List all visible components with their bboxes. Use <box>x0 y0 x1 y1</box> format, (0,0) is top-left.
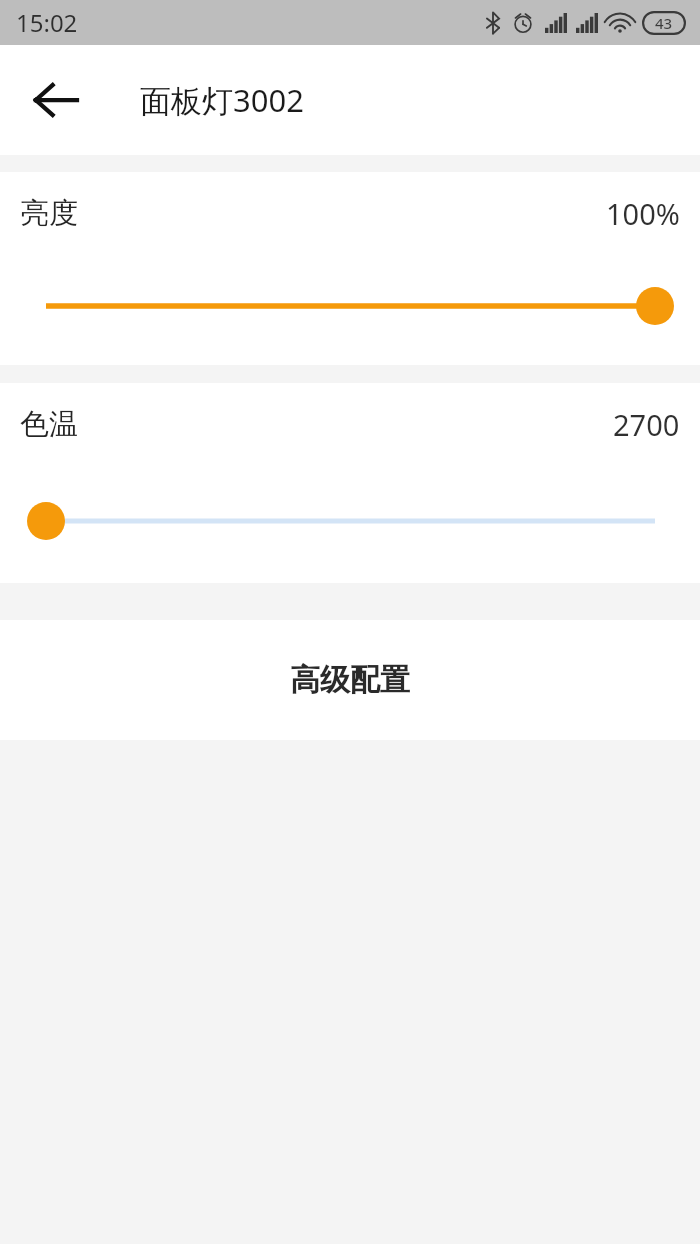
staticText: 2700 <box>613 405 680 444</box>
button[interactable] <box>0 493 700 549</box>
staticText: 色温 <box>20 406 78 443</box>
staticText: 亮度 <box>20 195 78 232</box>
staticText: 43 <box>655 13 673 33</box>
staticText: 15:02 <box>16 6 78 39</box>
button[interactable]: 高级配置 <box>0 620 700 740</box>
staticText: 面板灯3002 <box>140 79 304 121</box>
staticText: 高级配置 <box>290 661 410 699</box>
button[interactable] <box>0 278 700 334</box>
staticText: 100% <box>606 194 680 233</box>
button[interactable]: Back <box>22 66 90 134</box>
